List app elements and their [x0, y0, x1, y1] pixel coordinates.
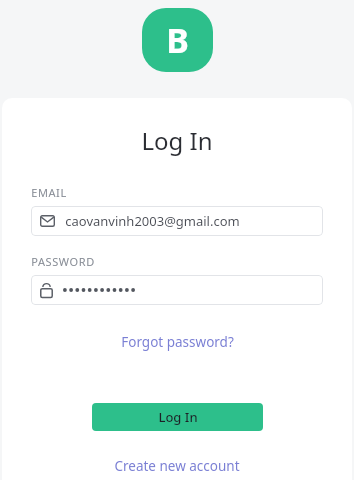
button[interactable]: Email	[31, 206, 323, 236]
staticText: B	[166, 17, 189, 63]
staticText: caovanvinh2003@gmail.com	[65, 212, 240, 230]
staticText: PASSWORD	[31, 254, 95, 269]
button[interactable]: Create new account	[2, 453, 352, 479]
staticText: EMAIL	[31, 185, 67, 200]
other: Password	[40, 283, 53, 298]
other: Email	[40, 215, 55, 227]
button[interactable]: Password	[31, 275, 323, 305]
staticText: Forgot password?	[121, 333, 234, 351]
staticText: Log In	[158, 408, 198, 426]
button[interactable]: Log In	[92, 403, 263, 431]
staticText: Log In	[141, 124, 213, 157]
staticText: Create new account	[114, 457, 240, 475]
button[interactable]: Forgot password?	[2, 329, 352, 355]
